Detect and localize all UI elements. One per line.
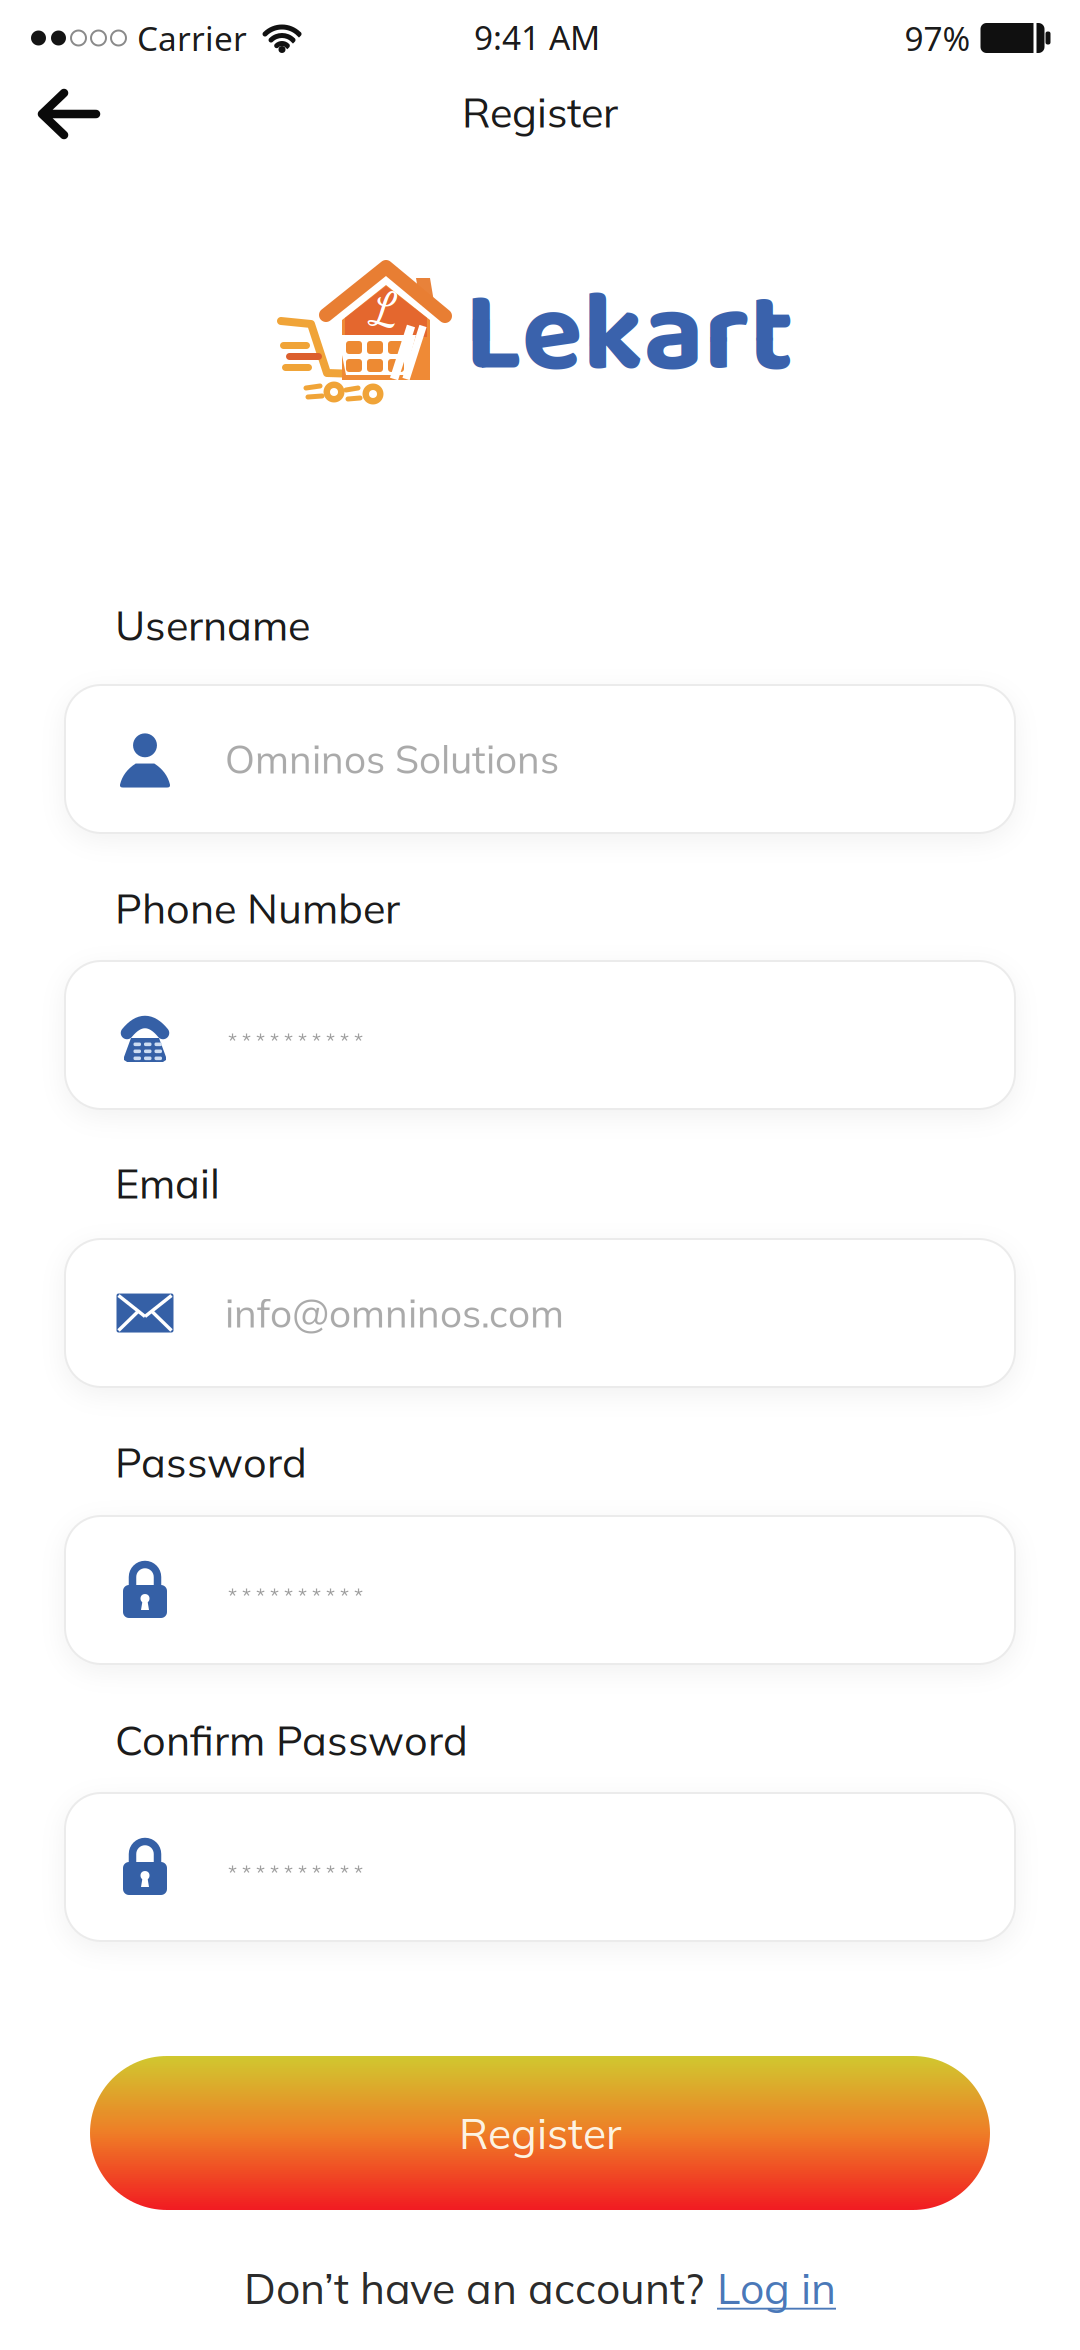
staticText: 9:41 AM: [474, 15, 600, 59]
button[interactable]: * * * * * * * * * *: [65, 1793, 1015, 1941]
staticText: * * * * * * * * * *: [228, 1859, 363, 1885]
staticText: Omninos Solutions: [225, 735, 559, 783]
staticText: 97%: [904, 16, 970, 60]
staticText: * * * * * * * * * *: [228, 1582, 363, 1608]
staticText: Phone Number: [115, 882, 400, 934]
button[interactable]: Back: [27, 80, 111, 148]
staticText: Carrier: [137, 16, 247, 60]
staticText: L: [370, 284, 397, 336]
staticText: * * * * * * * * * *: [228, 1027, 363, 1053]
staticText: Confirm Password: [115, 1714, 468, 1766]
button[interactable]: Register: [90, 2056, 990, 2210]
staticText: Log in: [717, 2261, 836, 2315]
staticText: Password: [115, 1436, 307, 1488]
staticText: Username: [115, 599, 310, 651]
button[interactable]: info@omninos.com: [65, 1239, 1015, 1387]
button[interactable]: Omninos Solutions: [65, 685, 1015, 833]
staticText: Don’t have an account?: [244, 2261, 704, 2315]
staticText: Email: [115, 1157, 220, 1209]
staticText: Lekart: [464, 245, 793, 427]
button[interactable]: * * * * * * * * * *: [65, 1516, 1015, 1664]
button[interactable]: Log in: [717, 2261, 836, 2315]
staticText: info@omninos.com: [225, 1289, 564, 1337]
staticText: Register: [459, 2106, 621, 2160]
button[interactable]: * * * * * * * * * *: [65, 961, 1015, 1109]
staticText: Register: [462, 86, 618, 138]
